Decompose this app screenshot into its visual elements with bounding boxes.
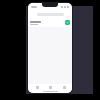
- button[interactable]: Search: [45, 84, 55, 90]
- button[interactable]: Profile: [59, 84, 69, 90]
- other: Verified: [65, 20, 70, 25]
- button[interactable]: Home: [32, 84, 42, 90]
- button[interactable]: Verified: [28, 18, 72, 27]
